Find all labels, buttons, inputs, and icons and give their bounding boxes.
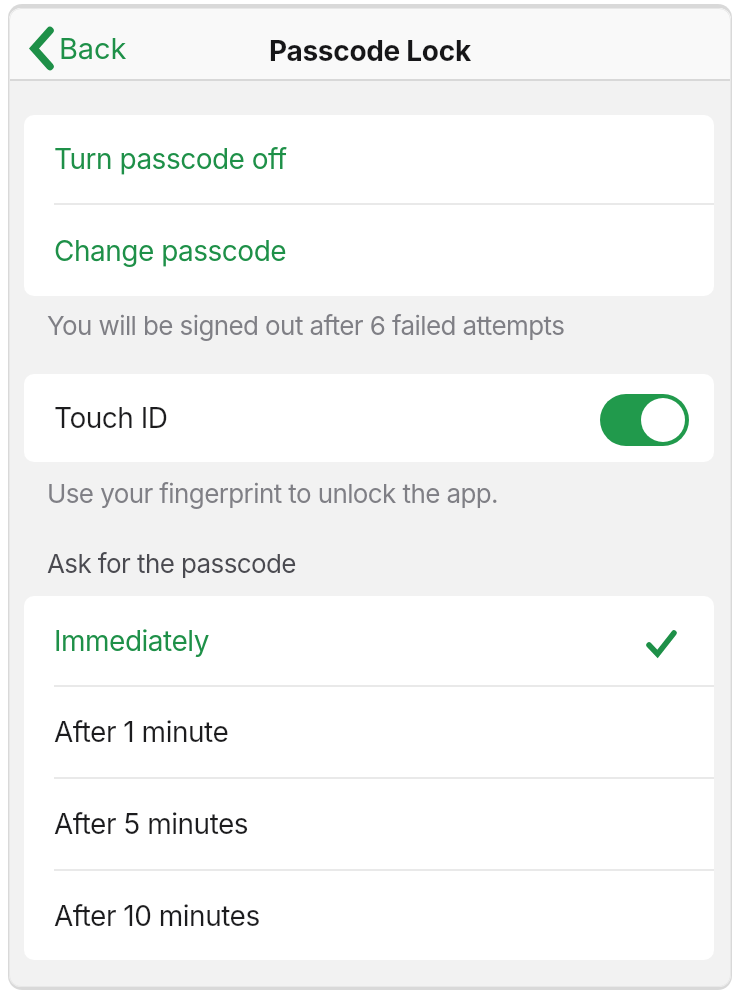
staticText: You will be signed out after 6 failed at…	[47, 310, 565, 341]
staticText: After 1 minute	[54, 715, 229, 749]
staticText: Passcode Lock	[269, 34, 471, 68]
button[interactable]: After 10 minutes	[24, 871, 714, 960]
staticText: Touch ID	[54, 401, 168, 435]
button[interactable]: After 5 minutes	[24, 779, 714, 869]
staticText: After 5 minutes	[54, 807, 249, 841]
button[interactable]	[600, 394, 689, 446]
button[interactable]: Change passcode	[24, 205, 714, 296]
staticText: Turn passcode off	[54, 142, 287, 176]
button[interactable]: Turn passcode off	[24, 115, 714, 203]
staticText: Immediately	[54, 624, 209, 658]
button[interactable]: Touch ID	[24, 374, 714, 462]
staticText: Change passcode	[54, 234, 287, 268]
staticText: After 10 minutes	[54, 899, 260, 933]
button[interactable]: After 1 minute	[24, 687, 714, 777]
staticText: Back	[59, 31, 127, 66]
button[interactable]: Immediately	[24, 596, 714, 685]
staticText: Ask for the passcode	[47, 548, 296, 579]
staticText: Use your fingerprint to unlock the app.	[47, 478, 498, 509]
button[interactable]: Back	[31, 27, 127, 70]
